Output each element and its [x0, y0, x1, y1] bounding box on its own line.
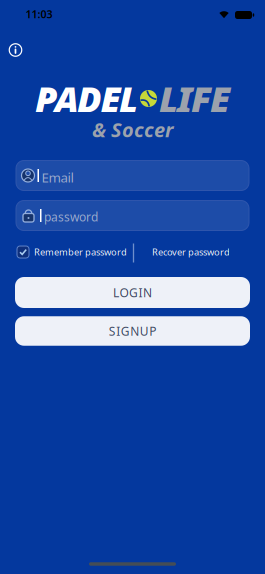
staticText: LOGIN	[113, 284, 152, 300]
staticText: LIFE	[159, 75, 230, 122]
button[interactable]: password	[16, 200, 249, 230]
button[interactable]: Email	[16, 160, 249, 190]
staticText: SIGNUP	[109, 323, 156, 339]
staticText: Email	[41, 168, 73, 186]
staticText: Recover password	[152, 246, 230, 258]
button[interactable]: Recover password	[152, 246, 230, 258]
staticText: 11:03	[25, 7, 52, 21]
button[interactable]: SIGNUP	[15, 316, 250, 346]
button[interactable]: Remember password	[17, 246, 127, 258]
button[interactable]	[5, 40, 25, 60]
staticText: PADEL	[35, 75, 138, 122]
staticText: & Soccer	[92, 116, 173, 143]
staticText: Remember password	[34, 246, 127, 258]
button[interactable]: LOGIN	[15, 277, 250, 308]
staticText: password	[44, 209, 98, 225]
